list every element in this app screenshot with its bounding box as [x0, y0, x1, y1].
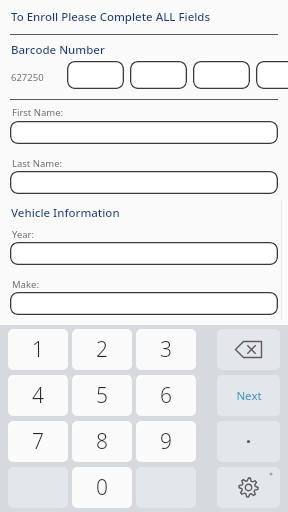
- staticText: 7: [32, 427, 44, 456]
- button[interactable]: Barcode digit field: [256, 61, 288, 89]
- button[interactable]: Barcode digit field: [130, 61, 187, 89]
- button[interactable]: Keyboard settings: [217, 467, 280, 508]
- button[interactable]: Period: [217, 421, 280, 462]
- button[interactable]: 2: [72, 329, 132, 370]
- staticText: 627250: [11, 71, 44, 84]
- button[interactable]: 3: [136, 329, 196, 370]
- staticText: 1: [32, 335, 44, 364]
- button[interactable]: [10, 171, 278, 194]
- button[interactable]: 8: [72, 421, 132, 462]
- button[interactable]: Barcode digit field: [193, 61, 250, 89]
- staticText: Make:: [12, 278, 39, 291]
- staticText: To Enroll Please Complete ALL Fields: [11, 9, 211, 25]
- button[interactable]: 1: [8, 329, 68, 370]
- button[interactable]: Next: [217, 375, 280, 416]
- button[interactable]: [10, 121, 278, 144]
- staticText: 5: [96, 381, 108, 410]
- staticText: Vehicle Information: [11, 205, 120, 221]
- staticText: 2: [96, 335, 108, 364]
- staticText: 3: [160, 335, 172, 364]
- button[interactable]: 4: [8, 375, 68, 416]
- staticText: Next: [236, 388, 262, 404]
- button[interactable]: [10, 242, 278, 265]
- staticText: 8: [96, 427, 108, 456]
- staticText: 9: [160, 427, 172, 456]
- button[interactable]: Backspace: [217, 329, 280, 370]
- staticText: 4: [32, 381, 44, 410]
- button[interactable]: 0: [72, 467, 132, 508]
- button[interactable]: 5: [72, 375, 132, 416]
- button[interactable]: 7: [8, 421, 68, 462]
- button[interactable]: [10, 292, 278, 315]
- staticText: Last Name:: [12, 157, 63, 170]
- staticText: 0: [96, 473, 108, 502]
- button[interactable]: 6: [136, 375, 196, 416]
- staticText: First Name:: [12, 106, 64, 119]
- staticText: Year:: [12, 228, 35, 241]
- staticText: Barcode Number: [11, 42, 105, 58]
- button[interactable]: 9: [136, 421, 196, 462]
- button[interactable]: Barcode digit field: [67, 61, 124, 89]
- staticText: 6: [160, 381, 172, 410]
